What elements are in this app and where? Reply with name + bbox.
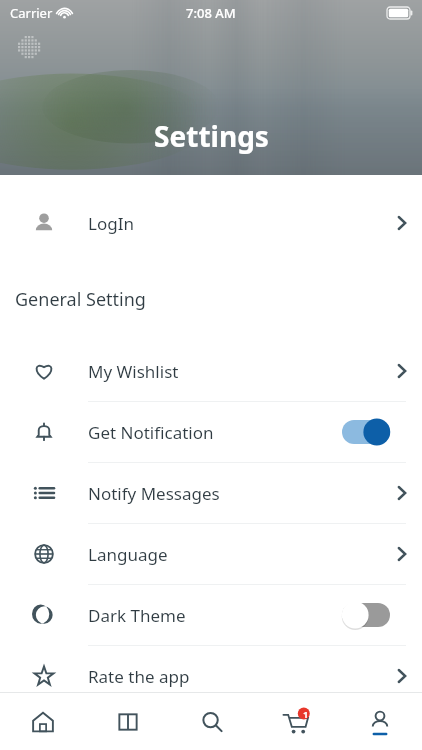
other: Open: [392, 213, 412, 233]
staticText: LogIn: [88, 212, 134, 235]
staticText: Dark Theme: [88, 604, 186, 627]
staticText: My Wishlist: [88, 360, 179, 383]
other: Open: [392, 544, 412, 564]
button[interactable]: Home: [0, 693, 85, 750]
staticText: Rate the app: [88, 665, 190, 688]
button[interactable]: Toggle on: [342, 420, 390, 444]
staticText: Settings: [154, 117, 269, 155]
button[interactable]: Rate the app: [0, 646, 422, 706]
staticText: Carrier: [10, 4, 53, 22]
button[interactable]: Catalog: [85, 693, 170, 750]
staticText: 7:08 AM: [186, 4, 236, 22]
other: Open: [392, 483, 412, 503]
staticText: Language: [88, 543, 168, 566]
button[interactable]: Search: [170, 693, 254, 750]
button[interactable]: Dark Theme: [0, 585, 422, 645]
button[interactable]: LogIn: [0, 195, 422, 251]
other: Open: [392, 666, 412, 686]
button[interactable]: Cart: [254, 693, 338, 750]
staticText: Notify Messages: [88, 482, 220, 505]
button[interactable]: Language: [0, 524, 422, 584]
button[interactable]: Profile: [338, 693, 422, 750]
other: Open: [392, 361, 412, 381]
staticText: 1: [303, 708, 309, 720]
button[interactable]: Notify Messages: [0, 463, 422, 523]
button[interactable]: Toggle off: [342, 603, 390, 627]
button[interactable]: Get Notification: [0, 402, 422, 462]
button[interactable]: My Wishlist: [0, 341, 422, 401]
staticText: General Setting: [15, 287, 146, 312]
staticText: Get Notification: [88, 421, 214, 444]
